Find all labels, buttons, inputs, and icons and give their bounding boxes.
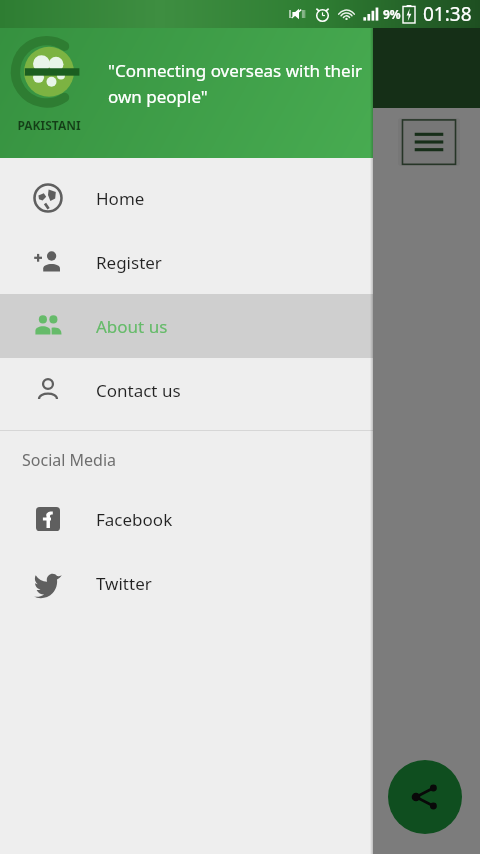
button[interactable]: Facebook <box>0 487 373 551</box>
staticText: We connect overseas Pakistani people. We… <box>14 270 187 372</box>
staticText: Register <box>96 251 162 274</box>
staticText: Home <box>96 187 145 210</box>
staticText: 01:38 <box>423 1 472 27</box>
button[interactable]: Share <box>388 760 462 834</box>
staticText: Social Media <box>22 449 117 471</box>
staticText: Contact us <box>96 379 181 402</box>
staticText: About us <box>96 315 168 338</box>
button[interactable]: Twitter <box>0 551 373 615</box>
button[interactable]: Home <box>0 166 373 230</box>
button[interactable]: About us <box>0 294 373 358</box>
staticText: 9% <box>383 6 401 22</box>
staticText: Twitter <box>96 572 152 595</box>
staticText: PAKISTANI <box>17 117 81 133</box>
staticText: Welcome to Pakistani with <box>14 192 212 214</box>
staticText: "Connecting overseas with their own peop… <box>108 59 363 108</box>
staticText: We offer packages for your business in P… <box>14 416 149 612</box>
button[interactable]: Register <box>0 230 373 294</box>
button[interactable]: Contact us <box>0 358 373 422</box>
button[interactable]: Open navigation menu <box>398 118 460 166</box>
staticText: Facebook <box>96 508 173 531</box>
